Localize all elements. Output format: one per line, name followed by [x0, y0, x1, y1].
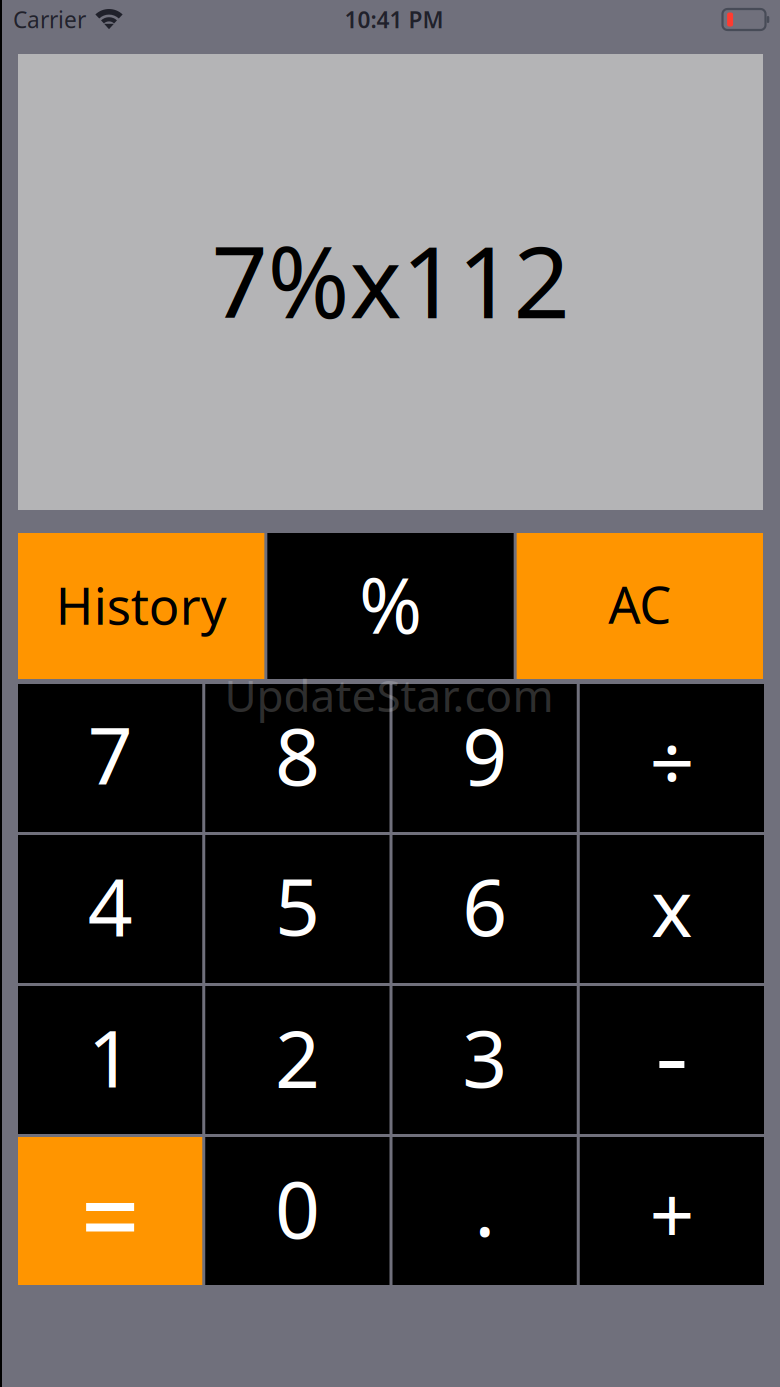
staticText: UpdateStar.com: [224, 666, 553, 724]
staticText: ÷: [649, 709, 694, 814]
staticText: 10:41 PM: [344, 4, 443, 34]
staticText: 0: [275, 1156, 320, 1260]
staticText: 7: [88, 702, 133, 806]
button[interactable]: 3: [392, 986, 577, 1134]
button[interactable]: History: [18, 533, 264, 679]
button[interactable]: 9: [392, 684, 577, 832]
staticText: x: [651, 854, 693, 959]
button[interactable]: Equals: [18, 1137, 202, 1285]
button[interactable]: Minus: [580, 986, 764, 1134]
staticText: 3: [462, 1005, 507, 1109]
button[interactable]: 0: [205, 1137, 389, 1285]
button[interactable]: 8: [205, 684, 389, 832]
staticText: 4: [88, 854, 133, 958]
staticText: 7%x112: [211, 214, 569, 345]
button[interactable]: ÷: [580, 684, 764, 832]
staticText: History: [56, 571, 227, 639]
button[interactable]: 7: [18, 684, 202, 832]
staticText: .: [474, 1154, 495, 1258]
staticText: 6: [462, 853, 507, 958]
button[interactable]: x: [580, 835, 764, 983]
button[interactable]: 5: [205, 835, 389, 983]
staticText: AC: [608, 570, 671, 638]
button[interactable]: 2: [205, 986, 389, 1134]
button[interactable]: AC: [517, 533, 763, 679]
staticText: 5: [275, 853, 320, 957]
button[interactable]: 6: [392, 835, 577, 983]
staticText: 2: [275, 1005, 320, 1110]
staticText: 1: [88, 1005, 133, 1109]
button[interactable]: .: [392, 1137, 577, 1285]
button[interactable]: 1: [18, 986, 202, 1134]
staticText: %: [359, 553, 422, 654]
staticText: +: [649, 1161, 694, 1266]
button[interactable]: 4: [18, 835, 202, 983]
staticText: Carrier: [13, 4, 86, 34]
button[interactable]: %: [267, 533, 514, 679]
staticText: 8: [275, 703, 320, 807]
button[interactable]: +: [580, 1137, 764, 1285]
staticText: 9: [462, 703, 507, 807]
